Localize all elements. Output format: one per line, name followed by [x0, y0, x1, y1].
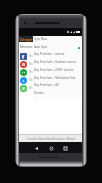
- button[interactable]: Home: [48, 145, 54, 151]
- button[interactable]: Buy Premium + Kustom License: [33, 59, 82, 67]
- staticText: Monitors: [20, 44, 35, 49]
- staticText: Buy Premium - License: [34, 52, 65, 56]
- button[interactable]: Auto Sync: [33, 44, 82, 52]
- button[interactable]: Buy Premium + ZOOP License: [33, 67, 82, 75]
- staticText: Share: [29, 62, 37, 66]
- staticText: Deeper Monitors: [20, 37, 49, 42]
- staticText: Share: [29, 86, 37, 90]
- button[interactable]: Buy Premium + Minimalist Text License: [33, 75, 82, 83]
- button[interactable]: Sync Now: [33, 36, 82, 44]
- staticText: Auto Sync: [34, 45, 48, 49]
- button[interactable]: f: [19, 52, 82, 60]
- button[interactable]: Buy Premium + All: [33, 82, 82, 90]
- staticText: Buy Premium + ZOOP License: [34, 68, 74, 72]
- staticText: Buy Premium + Minimalist Text License: [34, 76, 79, 80]
- staticText: Create New Notification (Beta): [27, 136, 75, 141]
- button[interactable]: G: [19, 60, 82, 68]
- staticText: Share: [29, 54, 37, 58]
- staticText: Buy Premium + Kustom License: [34, 60, 77, 64]
- staticText: Share: [29, 78, 37, 82]
- staticText: G: [22, 62, 26, 68]
- staticText: Buy Premium + All: [34, 83, 59, 87]
- staticText: Share: [29, 70, 37, 74]
- button[interactable]: Share: [19, 68, 82, 76]
- button[interactable]: Create New Notification (Beta): [19, 134, 82, 142]
- button[interactable]: Buy Premium - License: [33, 51, 82, 59]
- button[interactable]: Recent apps: [62, 145, 68, 151]
- staticText: Donate: [34, 91, 44, 95]
- staticText: Sync Now: [34, 37, 47, 41]
- button[interactable]: Share: [19, 76, 82, 84]
- button[interactable]: Back: [33, 145, 39, 151]
- button[interactable]: Donate: [33, 90, 82, 98]
- staticText: f: [22, 53, 25, 60]
- button[interactable]: Share: [19, 84, 82, 92]
